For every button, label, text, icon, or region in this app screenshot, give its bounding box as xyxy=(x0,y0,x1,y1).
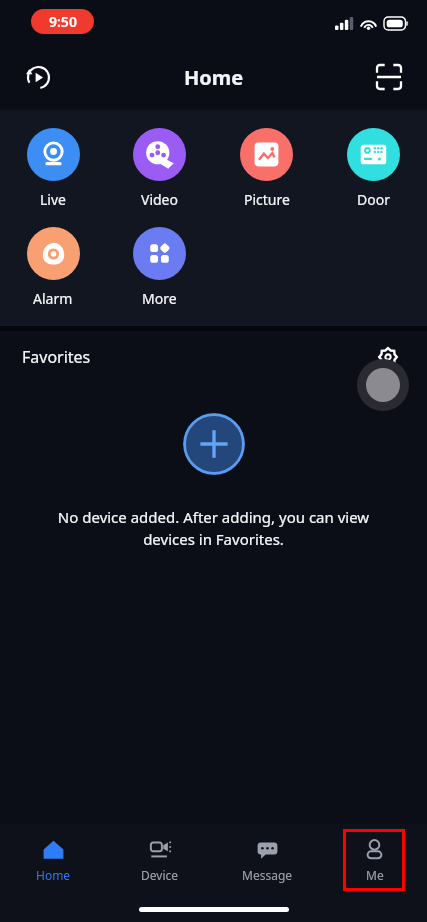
button[interactable]: Alarm xyxy=(0,223,106,312)
staticText: Favorites xyxy=(22,346,91,368)
staticText: Home xyxy=(184,64,244,91)
button[interactable]: Message xyxy=(236,829,298,891)
button[interactable]: Assistive button xyxy=(357,359,409,411)
staticText: More xyxy=(142,289,177,308)
button[interactable]: Device xyxy=(129,829,191,891)
button[interactable]: Video xyxy=(106,124,213,213)
button[interactable]: Favorites settings xyxy=(371,340,405,374)
staticText: No device added. After adding, you can v… xyxy=(38,507,389,549)
button[interactable]: Add device xyxy=(183,413,245,475)
button[interactable]: Picture xyxy=(213,124,320,213)
staticText: Device xyxy=(141,867,179,883)
button[interactable]: Live xyxy=(0,124,106,213)
button[interactable]: Door xyxy=(320,124,427,213)
staticText: 9:50 xyxy=(49,12,77,31)
staticText: Video xyxy=(141,190,178,209)
button[interactable]: Playback history xyxy=(16,55,60,99)
button[interactable]: More xyxy=(106,223,213,312)
staticText: Home xyxy=(36,867,71,883)
staticText: Door xyxy=(357,190,390,209)
staticText: Me xyxy=(366,867,384,883)
button[interactable]: Scan QR code xyxy=(367,55,411,99)
staticText: Live xyxy=(40,190,66,209)
staticText: Alarm xyxy=(33,289,73,308)
staticText: Message xyxy=(242,867,293,883)
button[interactable]: Home xyxy=(22,829,84,891)
staticText: Picture xyxy=(244,190,290,209)
button[interactable]: Me xyxy=(346,832,402,888)
